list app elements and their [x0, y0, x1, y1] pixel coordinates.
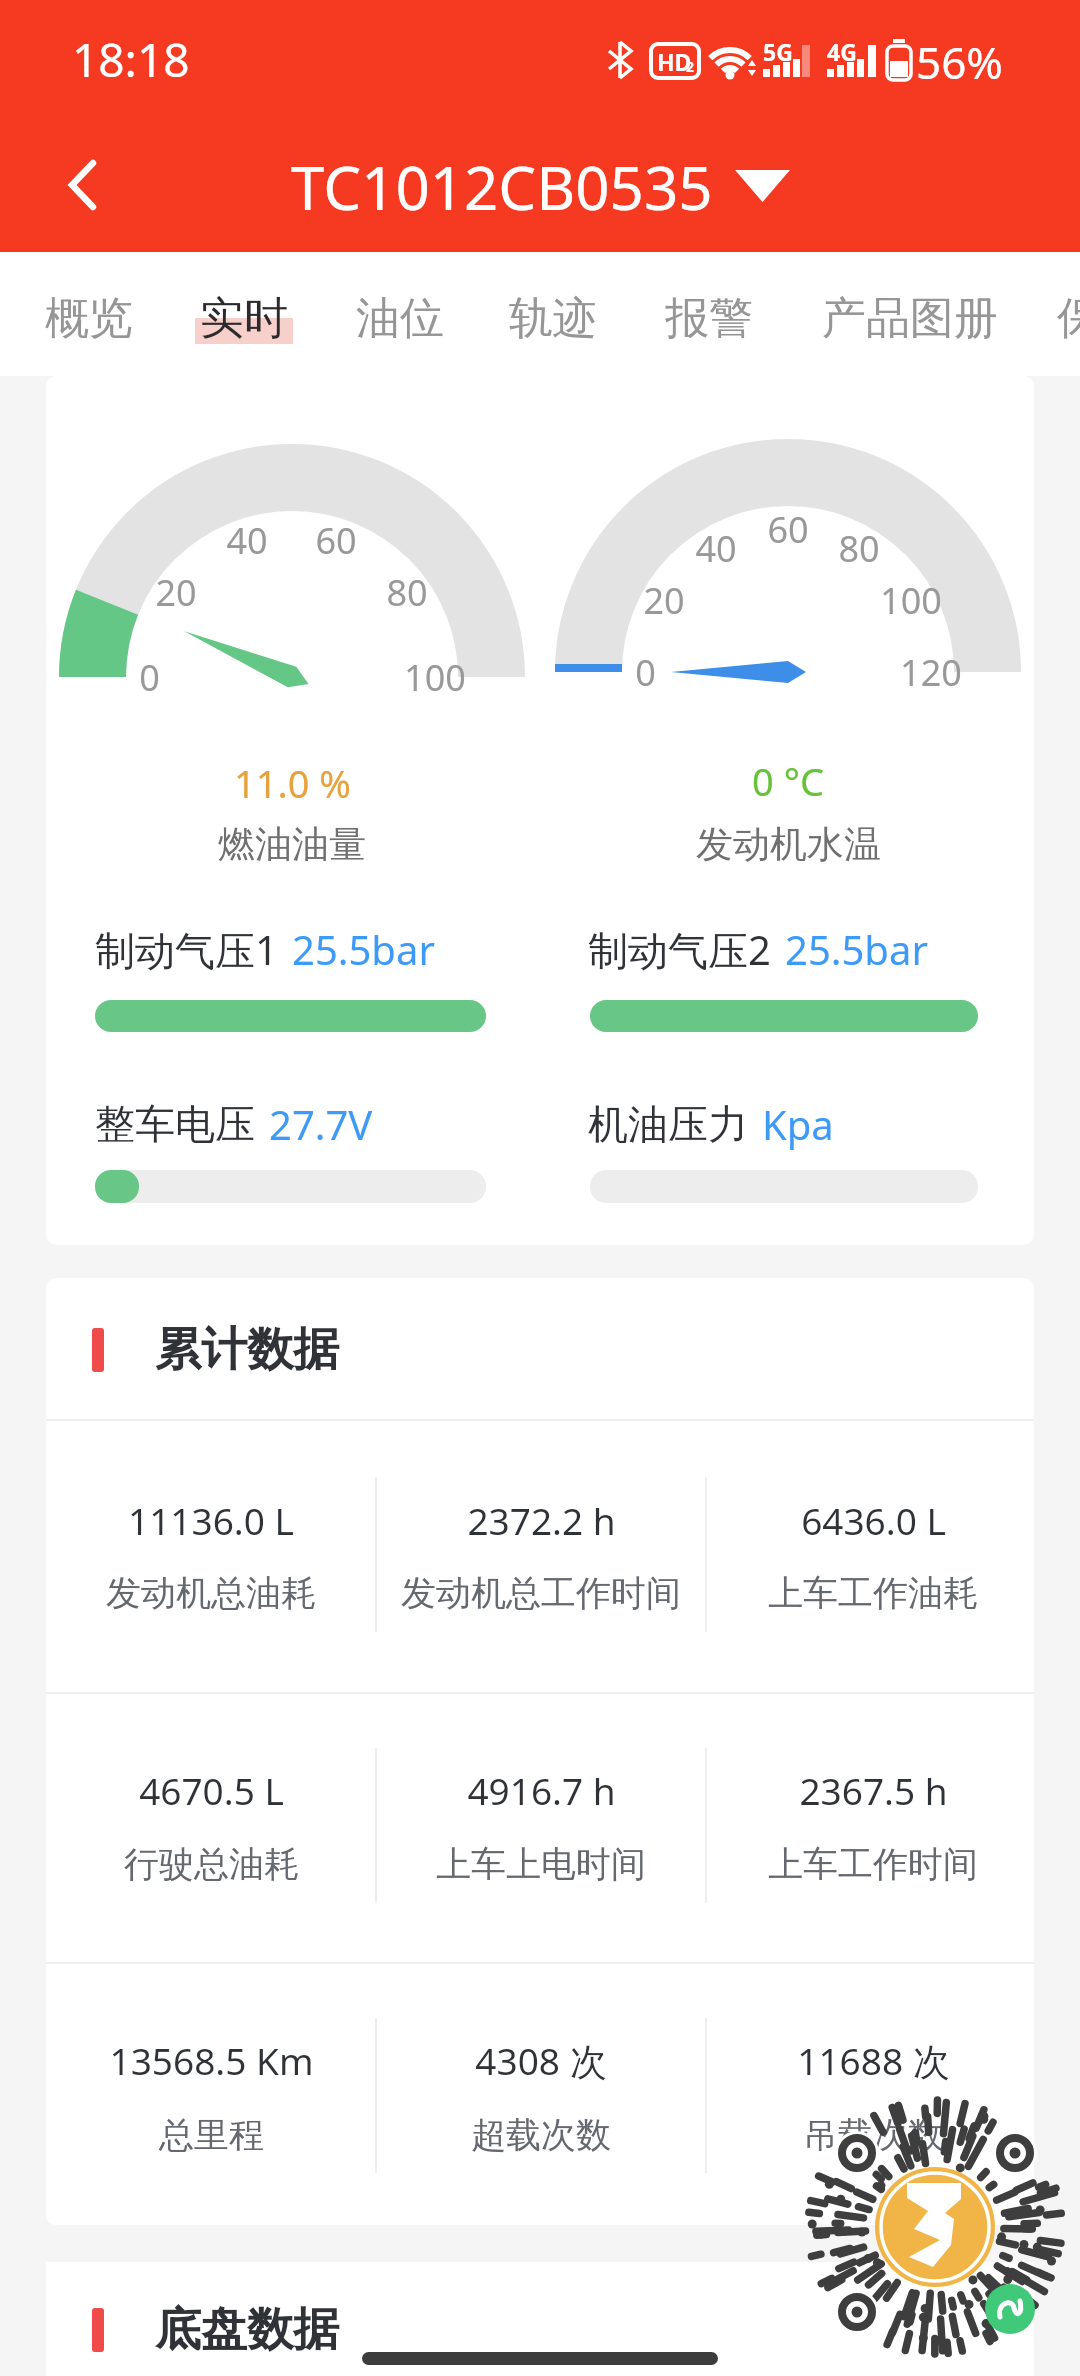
button[interactable]: 概览 — [33, 274, 145, 362]
button[interactable]: 油位 — [344, 274, 456, 362]
staticText: 轨迹 — [509, 291, 597, 346]
staticText: 18:18 — [72, 28, 190, 91]
staticText: 保养 — [1057, 291, 1080, 346]
staticText: 6436.0 L — [801, 1495, 946, 1545]
staticText: 上车工作时间 — [768, 1842, 978, 1886]
staticText: 燃油油量 — [218, 821, 366, 868]
staticText: 上车工作油耗 — [768, 1571, 978, 1615]
staticText: 整车电压 — [95, 1099, 255, 1149]
button[interactable]: 产品图册 — [810, 274, 1010, 362]
staticText: 80 — [838, 524, 880, 573]
staticText: 20 — [643, 576, 685, 625]
staticText: 吊载次数 — [803, 2113, 943, 2157]
staticText: 4670.5 L — [139, 1765, 284, 1815]
staticText: 产品图册 — [822, 291, 998, 346]
staticText: 行驶总油耗 — [124, 1842, 299, 1886]
staticText: 2 — [686, 57, 695, 76]
staticText: 27.7V — [269, 1097, 373, 1151]
staticText: 120 — [900, 648, 962, 697]
staticText: Kpa — [762, 1097, 834, 1151]
staticText: 机油压力 — [588, 1099, 748, 1149]
staticText: 100 — [880, 576, 942, 625]
staticText: 发动机总油耗 — [106, 1571, 316, 1615]
staticText: 制动气压2 — [588, 922, 771, 977]
staticText: TC1012CB0535 — [291, 146, 713, 226]
staticText: 11136.0 L — [128, 1495, 294, 1545]
staticText: 实时 — [200, 291, 288, 346]
staticText: 累计数据 — [155, 1321, 339, 1379]
staticText: 25.5bar — [785, 922, 928, 976]
staticText: 底盘数据 — [155, 2301, 339, 2359]
button[interactable]: 报警 — [653, 274, 765, 362]
staticText: HD — [657, 46, 692, 77]
staticText: 5G — [763, 36, 793, 67]
staticText: 4308 次 — [475, 2035, 607, 2086]
staticText: 11688 次 — [797, 2035, 950, 2086]
staticText: 25.5bar — [292, 922, 435, 976]
button[interactable]: 保养 — [1045, 274, 1080, 362]
staticText: 60 — [767, 505, 809, 554]
staticText: 发动机总工作时间 — [401, 1571, 681, 1615]
staticText: 0 — [139, 653, 160, 702]
button[interactable]: 实时 — [188, 274, 300, 362]
staticText: 超载次数 — [471, 2113, 611, 2157]
staticText: 11.0 % — [234, 757, 351, 809]
staticText: 概览 — [45, 291, 133, 346]
staticText: 0 — [635, 648, 656, 697]
staticText: 2372.2 h — [467, 1495, 616, 1545]
staticText: 油位 — [356, 291, 444, 346]
button[interactable]: TC1012CB0535 — [0, 146, 1080, 226]
staticText: 100 — [404, 653, 466, 702]
staticText: 发动机水温 — [696, 821, 881, 868]
staticText: 56% — [916, 32, 1003, 92]
staticText: 13568.5 Km — [109, 2035, 314, 2085]
staticText: 20 — [155, 568, 197, 617]
staticText: 4916.7 h — [467, 1765, 616, 1815]
staticText: 40 — [695, 524, 737, 573]
staticText: 制动气压1 — [95, 922, 278, 977]
button[interactable] — [36, 140, 132, 236]
staticText: 40 — [226, 516, 268, 565]
staticText: 上车上电时间 — [436, 1842, 646, 1886]
button[interactable]: 轨迹 — [497, 274, 609, 362]
staticText: 60 — [315, 516, 357, 565]
staticText: 4G — [827, 36, 857, 67]
staticText: 2367.5 h — [799, 1765, 948, 1815]
staticText: 总里程 — [159, 2113, 264, 2157]
staticText: 0 °C — [752, 755, 824, 807]
staticText: 报警 — [665, 291, 753, 346]
staticText: 80 — [386, 568, 428, 617]
